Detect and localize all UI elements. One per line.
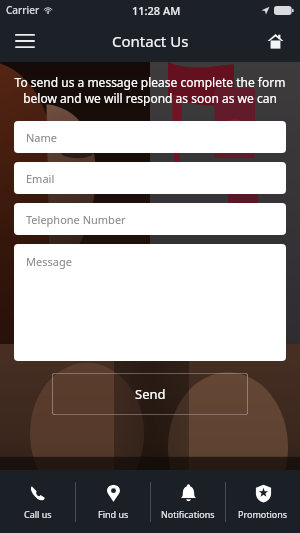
button[interactable]: Notifications (151, 478, 225, 526)
staticText: Find us (98, 508, 129, 520)
button[interactable]: Home (258, 24, 292, 58)
staticText: Notifications (161, 508, 215, 520)
button[interactable]: Find us (76, 478, 150, 526)
staticText: Telephone Number (26, 212, 126, 227)
staticText: Promotions (238, 508, 288, 520)
staticText: Name (26, 130, 58, 145)
button[interactable]: Name (14, 121, 286, 153)
button[interactable]: Menu (8, 24, 42, 58)
staticText: Email (26, 171, 55, 186)
staticText: To send us a message please complete the… (14, 74, 286, 107)
staticText: Send (135, 385, 166, 403)
staticText: Carrier (6, 3, 40, 17)
staticText: Contact Us (112, 31, 189, 51)
button[interactable]: Call us (0, 478, 75, 526)
button[interactable]: Promotions (226, 478, 300, 526)
button[interactable]: Email (14, 162, 286, 194)
staticText: Message (26, 254, 72, 269)
button[interactable]: Message (14, 244, 286, 361)
button[interactable]: Send (52, 373, 248, 415)
staticText: 11:28 AM (132, 3, 181, 18)
button[interactable]: Telephone Number (14, 203, 286, 235)
staticText: Call us (24, 508, 52, 520)
